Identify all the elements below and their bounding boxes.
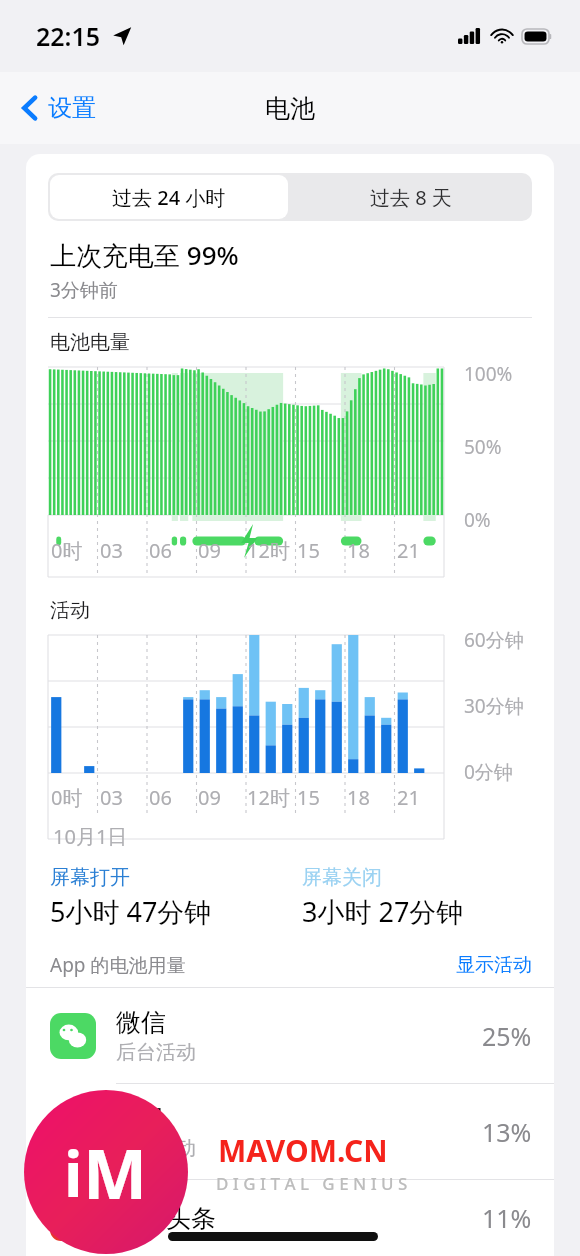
staticText: 5小时 47分钟 (50, 893, 212, 930)
staticText: MAVOM.CN (218, 1130, 388, 1171)
staticText: 15 (297, 784, 320, 811)
staticText: 09 (198, 784, 221, 811)
button[interactable]: 过去 24 小时 (50, 175, 288, 219)
staticText: 电池电量 (50, 330, 130, 355)
staticText: 屏幕打开 (50, 865, 130, 890)
staticText: 60分钟 (464, 627, 524, 653)
staticText: 21 (397, 537, 420, 564)
button[interactable]: 头条 (26, 1180, 554, 1256)
staticText: 21 (397, 784, 420, 811)
staticText: D I G I T A L G E N I U S (216, 1172, 408, 1195)
staticText: 后台活动 (116, 1040, 196, 1065)
staticText: App 的电池用量 (50, 952, 186, 978)
staticText: 3小时 27分钟 (302, 893, 464, 930)
staticText: 25% (482, 1019, 532, 1053)
button[interactable]: 显示活动 (456, 953, 532, 977)
button[interactable]: 过去 8 天 (290, 173, 532, 221)
staticText: 微信 (116, 1007, 166, 1038)
staticText: 18 (347, 537, 370, 564)
staticText: 03 (100, 537, 123, 564)
staticText: 15 (297, 537, 320, 564)
staticText: 06 (149, 537, 172, 564)
button[interactable]: 微信 (26, 988, 554, 1083)
staticText: 相机 (116, 1103, 166, 1134)
staticText: 22:15 (36, 19, 101, 53)
staticText: i (64, 1131, 83, 1215)
staticText: 11% (482, 1201, 532, 1235)
staticText: 13% (482, 1115, 532, 1149)
staticText: 12时 (247, 784, 290, 811)
staticText: 活动 (50, 598, 90, 623)
staticText: 今日头条 (116, 1203, 216, 1234)
staticText: 100% (464, 361, 513, 387)
staticText: 设置 (48, 93, 96, 123)
staticText: M (83, 1126, 148, 1219)
staticText: 3分钟前 (50, 277, 118, 303)
button[interactable]: 相机 (26, 1084, 554, 1179)
staticText: 过去 24 小时 (112, 184, 226, 211)
staticText: 后台活动 (116, 1136, 196, 1161)
staticText: 电池 (265, 93, 315, 124)
staticText: 12时 (247, 537, 290, 564)
staticText: 10月1日 (53, 823, 128, 850)
staticText: 18 (347, 784, 370, 811)
staticText: 0时 (51, 537, 83, 564)
staticText: 上次充电至 99% (50, 237, 239, 273)
staticText: 0分钟 (464, 759, 513, 785)
staticText: 过去 8 天 (370, 184, 452, 211)
staticText: 09 (198, 537, 221, 564)
staticText: 0% (464, 507, 491, 533)
staticText: 50% (464, 434, 502, 460)
staticText: 06 (149, 784, 172, 811)
button[interactable]: 设置 (16, 87, 102, 129)
staticText: 显示活动 (456, 953, 532, 977)
staticText: 03 (100, 784, 123, 811)
staticText: 30分钟 (464, 693, 524, 719)
staticText: 0时 (51, 784, 83, 811)
staticText: 屏幕关闭 (302, 865, 382, 890)
